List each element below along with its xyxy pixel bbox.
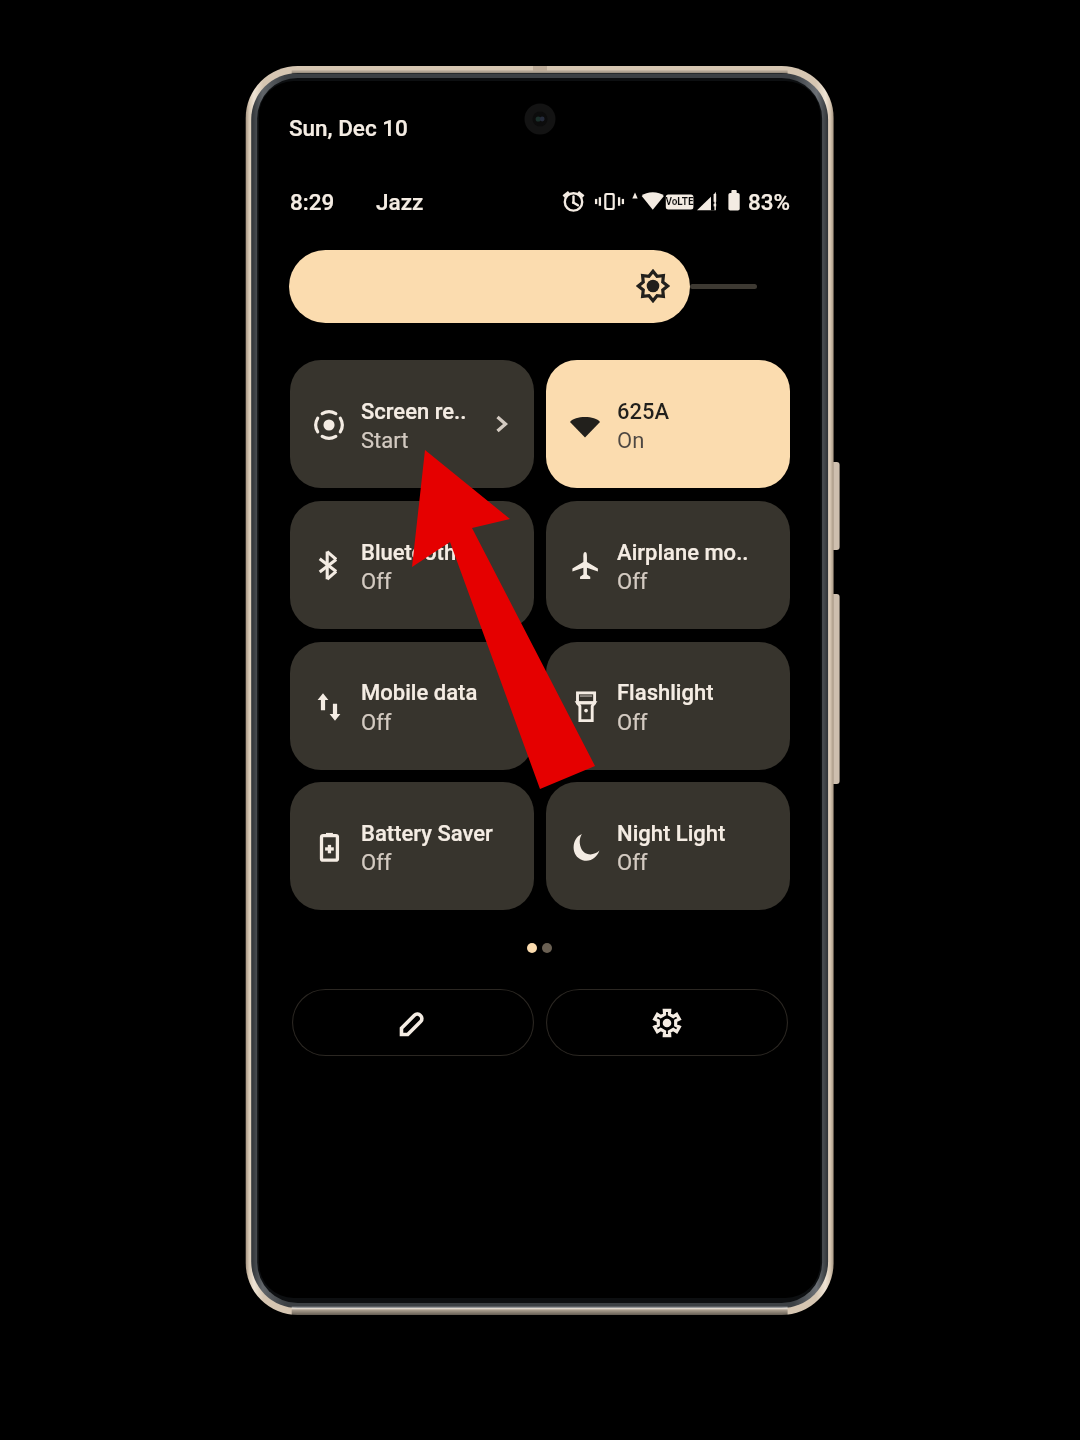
button[interactable] (546, 360, 790, 488)
button[interactable]: Brightness (289, 250, 757, 323)
staticText: Off (617, 710, 648, 736)
button[interactable] (290, 642, 534, 770)
staticText: 625A (617, 399, 670, 425)
button[interactable] (290, 360, 534, 488)
button[interactable] (546, 501, 790, 629)
button[interactable] (290, 501, 534, 629)
staticText: Flashlight (617, 680, 714, 706)
staticText: Off (617, 569, 648, 595)
button[interactable] (290, 782, 534, 910)
staticText: Mobile data (361, 680, 478, 706)
button[interactable] (546, 782, 790, 910)
staticText: Airplane mo.. (617, 540, 749, 566)
button[interactable] (546, 642, 790, 770)
staticText: Sun, Dec 10 (289, 115, 408, 141)
staticText: Off (361, 850, 392, 876)
staticText: Off (361, 710, 392, 736)
staticText: Bluetooth (361, 540, 457, 566)
button[interactable]: Settings (546, 989, 788, 1056)
staticText: Screen re.. (361, 399, 467, 425)
staticText: Start (361, 428, 409, 454)
staticText: On (617, 428, 645, 454)
staticText: Off (617, 850, 648, 876)
staticText: Battery Saver (361, 821, 493, 847)
staticText: VoLTE (665, 196, 694, 208)
staticText: Jazz (376, 189, 424, 215)
staticText: 83% (748, 189, 791, 215)
staticText: Night Light (617, 821, 726, 847)
staticText: 8:29 (290, 189, 335, 215)
button[interactable]: Edit tiles (292, 989, 534, 1056)
staticText: Off (361, 569, 392, 595)
